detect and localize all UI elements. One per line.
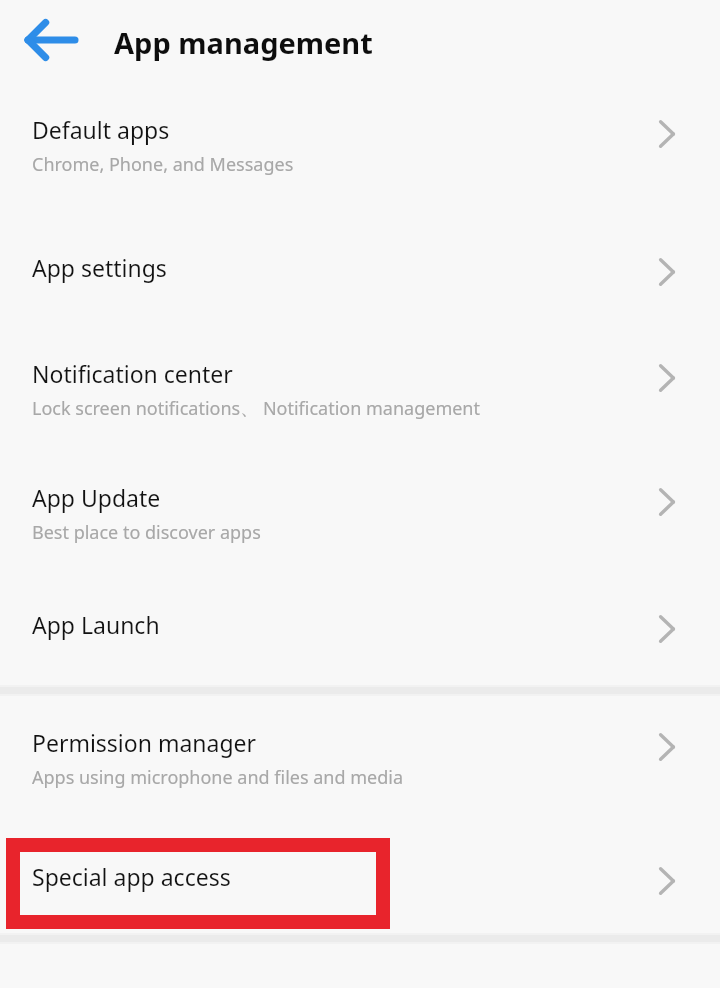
button[interactable]: Notification center [0,330,720,456]
staticText: Permission manager [32,727,257,758]
staticText: Notification center [32,358,233,389]
staticText: Chrome, Phone, and Messages [32,152,294,177]
button[interactable]: App Launch [0,582,720,679]
staticText: Best place to discover apps [32,520,261,545]
staticText: App management [114,23,373,62]
staticText: Lock screen notifications、 Notification … [32,396,480,421]
staticText: Apps using microphone and files and medi… [32,765,403,790]
staticText: Special app access [32,861,231,892]
staticText: App Launch [32,609,160,640]
button[interactable]: Special app access [0,831,720,929]
staticText: App settings [32,252,167,283]
staticText: App Update [32,482,161,513]
button[interactable]: Back [14,8,88,72]
button[interactable]: App Update [0,456,720,582]
button[interactable]: Default apps [0,88,720,224]
button[interactable]: Permission manager [0,701,720,831]
staticText: Default apps [32,114,170,145]
button[interactable]: App settings [0,224,720,330]
